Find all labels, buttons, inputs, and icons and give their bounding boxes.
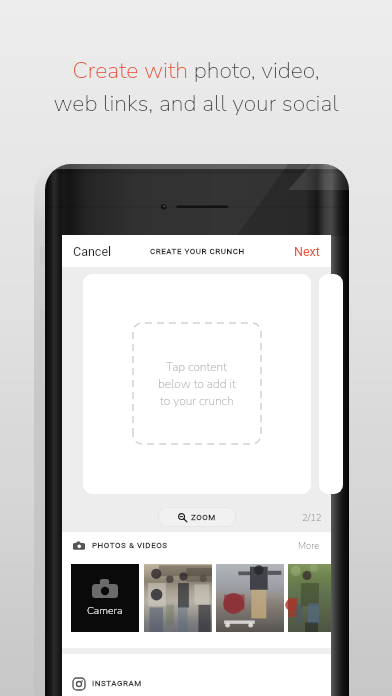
button[interactable]: Instagram bbox=[62, 670, 331, 696]
staticText: INSTAGRAM bbox=[92, 679, 142, 688]
button[interactable]: Camera bbox=[71, 564, 139, 632]
staticText: Create with photo, video, bbox=[72, 55, 320, 86]
staticText: CREATE YOUR CRUNCH bbox=[150, 247, 245, 256]
button[interactable]: ZOOM bbox=[158, 507, 236, 527]
button[interactable]: More bbox=[298, 539, 320, 552]
button[interactable]: Cancel bbox=[62, 238, 118, 265]
button[interactable]: Photo 3 bbox=[288, 564, 331, 632]
other: Photos and videos bbox=[73, 540, 85, 552]
staticText: web links, and all your social bbox=[53, 88, 339, 119]
button[interactable]: Next bbox=[288, 238, 331, 265]
staticText: Camera bbox=[87, 603, 123, 617]
button[interactable]: Photo 2 bbox=[216, 564, 284, 632]
button[interactable]: Tap content bbox=[83, 274, 311, 494]
button[interactable]: Photos and videos bbox=[62, 532, 331, 559]
staticText: below to add it bbox=[158, 376, 236, 392]
staticText: ZOOM bbox=[191, 513, 216, 522]
staticText: PHOTOS & VIDEOS bbox=[92, 541, 168, 550]
staticText: to your crunch bbox=[160, 393, 234, 409]
staticText: 2/12 bbox=[302, 511, 322, 524]
other: Instagram bbox=[73, 678, 85, 690]
staticText: Tap content bbox=[166, 359, 228, 375]
button[interactable]: Photo 1 bbox=[144, 564, 212, 632]
